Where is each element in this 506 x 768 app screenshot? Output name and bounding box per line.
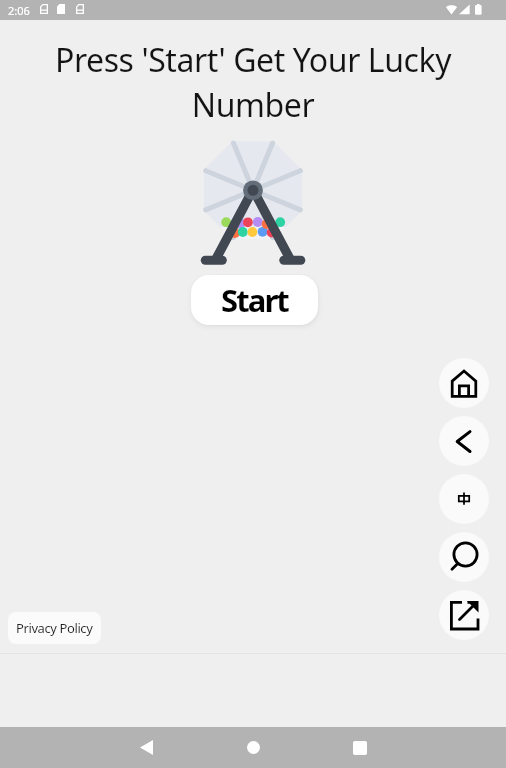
button[interactable]: Home [439, 358, 489, 408]
button[interactable]: Recent apps [340, 727, 380, 768]
staticText: Press 'Start' Get Your Lucky Number [24, 38, 482, 127]
button[interactable]: Change language [439, 474, 489, 524]
button[interactable]: Back [439, 416, 489, 466]
staticText: 2:06 [8, 3, 30, 18]
button[interactable]: Start [191, 275, 318, 325]
button[interactable]: Open in browser [439, 590, 489, 640]
button[interactable]: Back [126, 727, 166, 768]
button[interactable]: Home [233, 727, 273, 768]
staticText: Start [221, 279, 288, 321]
button[interactable]: Search [439, 532, 489, 582]
staticText: Privacy Policy [16, 619, 93, 637]
button[interactable]: Privacy Policy [8, 612, 101, 644]
